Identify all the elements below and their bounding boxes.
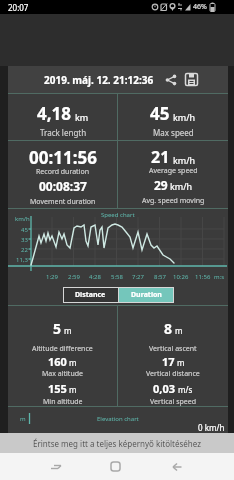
staticText: Speed chart [101, 211, 135, 219]
staticText: Movement duration [30, 197, 96, 207]
button[interactable]: 8 [118, 306, 228, 406]
staticText: km/h [173, 111, 196, 123]
button[interactable]: 2019. máj. 12. 21:12:36 [8, 66, 228, 93]
staticText: 17 [162, 354, 175, 369]
staticText: Vertical distance [146, 369, 200, 379]
staticText: Érintse meg itt a teljes képernyő kitölt… [33, 438, 201, 449]
staticText: 160 [48, 354, 67, 369]
staticText: 2019. máj. 12. 21:12:36 [44, 73, 154, 87]
staticText: Elevation chart [97, 415, 139, 423]
staticText: 00:11:56 [29, 146, 97, 169]
staticText: 11:56 [195, 273, 211, 281]
button[interactable]: 21 [118, 141, 228, 208]
button[interactable] [185, 73, 198, 86]
button[interactable]: 45 [118, 94, 228, 140]
staticText: Avg. speed moving [142, 196, 205, 206]
button[interactable]: Distance [63, 287, 118, 303]
button[interactable]: Érintse meg itt a teljes képernyő kitölt… [0, 433, 234, 453]
staticText: 33 [21, 236, 28, 244]
button[interactable]: Duration [119, 287, 174, 303]
staticText: 8 [164, 319, 173, 338]
staticText: m [64, 325, 72, 336]
staticText: Min altitude [43, 397, 83, 406]
staticText: m [20, 415, 26, 423]
button[interactable] [165, 74, 177, 86]
staticText: 00:08:37 [39, 178, 87, 194]
staticText: Vertical ascent [149, 344, 197, 354]
button[interactable]: 5 [8, 306, 117, 406]
staticText: 2:59 [68, 273, 80, 281]
staticText: Distance [75, 290, 106, 300]
staticText: Altitude difference [32, 344, 93, 354]
staticText: m [177, 357, 185, 368]
staticText: Record duration [36, 167, 89, 177]
staticText: 0,03 [153, 381, 176, 396]
staticText: 11,3 [16, 256, 28, 264]
staticText: km [75, 111, 89, 123]
staticText: 7:27 [132, 273, 144, 281]
button[interactable] [97, 453, 133, 480]
staticText: 5 [53, 319, 62, 338]
staticText: 0 km/h [198, 422, 225, 433]
staticText: Duration [131, 290, 162, 300]
staticText: 45 [150, 102, 170, 125]
staticText: km/h [15, 215, 30, 223]
staticText: Average speed [149, 166, 198, 176]
staticText: 10:26 [173, 273, 189, 281]
staticText: m [69, 357, 77, 368]
button[interactable] [159, 453, 195, 480]
staticText: 20:07 [8, 2, 29, 13]
staticText: m [69, 384, 77, 395]
staticText: km/h [170, 180, 193, 192]
staticText: m [175, 325, 183, 336]
staticText: 155 [48, 381, 67, 396]
staticText: 22 [21, 246, 28, 254]
staticText: km/h [173, 154, 196, 166]
staticText: Track length [40, 127, 87, 138]
staticText: Vertical speed [150, 397, 197, 406]
staticText: 5:58 [111, 273, 123, 281]
staticText: 46% [193, 2, 207, 12]
staticText: 45 [21, 226, 28, 234]
staticText: m/s [178, 384, 193, 395]
staticText: 1:29 [46, 273, 58, 281]
staticText: 4:28 [89, 273, 101, 281]
button[interactable]: 4,18 [8, 94, 117, 140]
staticText: 21 [151, 146, 170, 168]
staticText: m:s [214, 273, 225, 281]
button[interactable]: 00:11:56 [8, 141, 117, 208]
staticText: Max speed [153, 127, 194, 138]
button[interactable] [38, 453, 74, 480]
staticText: 29 [154, 177, 168, 193]
staticText: Max altitude [42, 369, 83, 379]
staticText: 4,18 [37, 102, 72, 125]
staticText: 8:57 [154, 273, 166, 281]
